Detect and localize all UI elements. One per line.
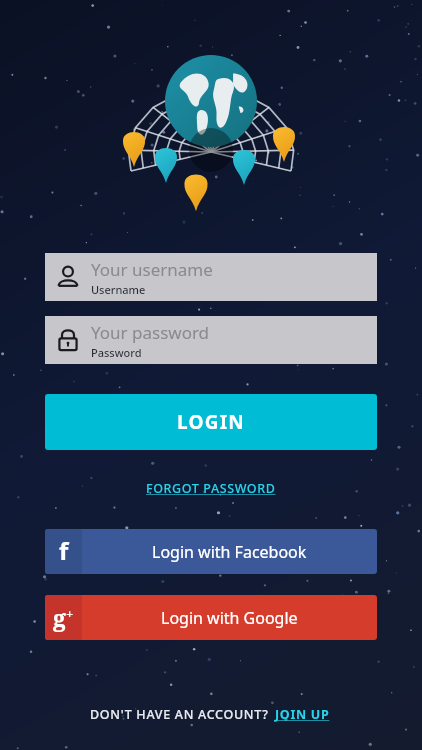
staticText: Login with Google xyxy=(161,607,298,629)
button[interactable]: f xyxy=(45,529,377,574)
button[interactable]: FORGOT PASSWORD xyxy=(140,477,282,500)
button[interactable]: g xyxy=(45,595,377,640)
button[interactable]: JOIN UP xyxy=(273,704,332,725)
staticText: Login with Facebook xyxy=(152,541,307,563)
staticText: g xyxy=(53,602,66,633)
staticText: Your password xyxy=(91,321,210,344)
staticText: FORGOT PASSWORD xyxy=(146,480,276,497)
staticText: Username xyxy=(91,282,146,297)
button[interactable]: LOGIN xyxy=(45,394,377,450)
staticText: + xyxy=(66,605,74,623)
staticText: Password xyxy=(91,345,142,360)
staticText: JOIN UP xyxy=(275,706,330,723)
button[interactable]: Your password xyxy=(45,316,377,364)
staticText: Your username xyxy=(91,258,213,281)
staticText: f xyxy=(59,534,69,567)
staticText: LOGIN xyxy=(177,409,245,435)
button[interactable]: Your username xyxy=(45,253,377,301)
staticText: DON'T HAVE AN ACCOUNT? xyxy=(90,706,273,723)
